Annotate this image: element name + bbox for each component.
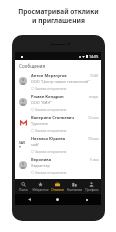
- staticText: вчера: [89, 95, 99, 99]
- staticText: Туристик: [31, 121, 48, 126]
- staticText: sadf: [31, 142, 39, 147]
- staticText: SAVT: [19, 140, 27, 148]
- staticText: и приглашения: [32, 16, 85, 25]
- staticText: Заявка отправлена: [35, 170, 67, 175]
- staticText: Наталья Юрьева: [31, 136, 66, 141]
- staticText: Заявка отправлена: [35, 107, 67, 112]
- button[interactable]: Избранное: [32, 179, 49, 194]
- staticText: Просматривай отклики: [18, 7, 99, 16]
- staticText: Сообщения: [19, 63, 46, 69]
- button[interactable]: Отклики: [49, 179, 66, 194]
- button[interactable]: Поиск: [15, 179, 32, 194]
- staticText: Валерина Станкевич: [31, 115, 75, 120]
- staticText: Заявка отправлена: [35, 149, 67, 154]
- staticText: ООО Ромашка: [31, 184, 58, 189]
- staticText: 10 мая: [88, 137, 99, 141]
- button[interactable]: Вероника: [15, 155, 101, 176]
- button[interactable]: Валерина Станкевич: [15, 113, 101, 134]
- button[interactable]: Профиль: [83, 179, 100, 194]
- button[interactable]: Роман Кондрин: [15, 92, 101, 113]
- button[interactable]: Back: [15, 194, 43, 205]
- staticText: Компании: [67, 188, 82, 192]
- staticText: Роман Кондрин: [31, 94, 64, 99]
- staticText: Заявка отправлена: [35, 128, 67, 133]
- staticText: 12 мая: [88, 116, 99, 120]
- staticText: Отклики: [51, 188, 64, 192]
- button[interactable]: Светлана Жданова: [15, 176, 101, 197]
- staticText: ООО "Центр новых технологий": [31, 79, 90, 84]
- staticText: Хэдхантер: [31, 163, 50, 168]
- staticText: Заявка отправлена: [35, 86, 67, 91]
- button[interactable]: Компании: [66, 179, 83, 194]
- button[interactable]: Home: [43, 194, 72, 205]
- staticText: Антон Мерзлугов: [31, 73, 67, 78]
- staticText: Избранное: [32, 188, 49, 192]
- staticText: Заявка отправлена: [35, 191, 67, 196]
- staticText: Вероника: [31, 157, 52, 162]
- staticText: Светлана Жданова: [31, 178, 70, 183]
- button[interactable]: SAVT: [15, 134, 101, 155]
- staticText: Поиск: [19, 188, 28, 192]
- staticText: 5 мая: [90, 158, 99, 162]
- staticText: Профиль: [85, 188, 99, 192]
- staticText: 14:05: [89, 54, 99, 59]
- button[interactable]: Антон Мерзлугов: [15, 71, 101, 92]
- staticText: 13:48: [90, 74, 99, 78]
- staticText: ООО "БИН": [31, 100, 52, 105]
- button[interactable]: Recents: [72, 194, 101, 205]
- staticText: 2 мая: [90, 179, 99, 183]
